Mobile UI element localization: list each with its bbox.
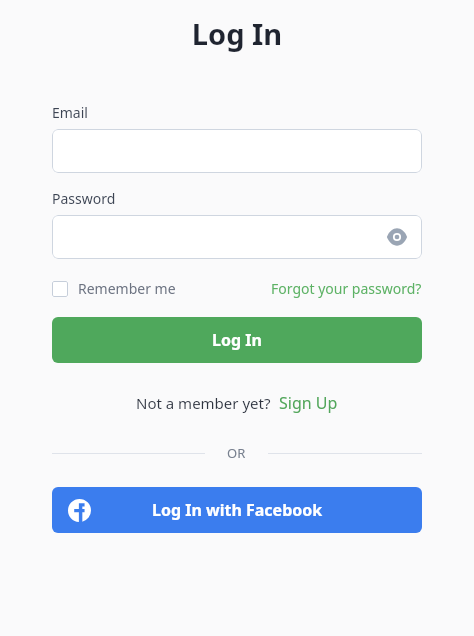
staticText: Log In xyxy=(52,14,422,53)
staticText: Log In with Facebook xyxy=(152,499,323,521)
staticText: Sign Up xyxy=(279,392,338,414)
staticText: Remember me xyxy=(78,279,176,298)
button[interactable]: Log In xyxy=(52,317,422,363)
button[interactable]: Remember me xyxy=(52,279,176,298)
button[interactable] xyxy=(52,129,422,173)
button[interactable]: Log In with Facebook xyxy=(52,487,422,533)
staticText: Password xyxy=(52,189,116,208)
button[interactable]: Forgot your password? xyxy=(271,279,422,298)
button[interactable]: Show password xyxy=(382,222,412,252)
staticText: Forgot your password? xyxy=(271,279,422,298)
staticText: Log In xyxy=(212,329,262,351)
button[interactable]: Sign Up xyxy=(279,392,338,414)
staticText: Email xyxy=(52,103,88,122)
staticText: Not a member yet? xyxy=(136,393,271,413)
button[interactable]: Show password xyxy=(52,215,422,259)
staticText: OR xyxy=(227,444,246,462)
